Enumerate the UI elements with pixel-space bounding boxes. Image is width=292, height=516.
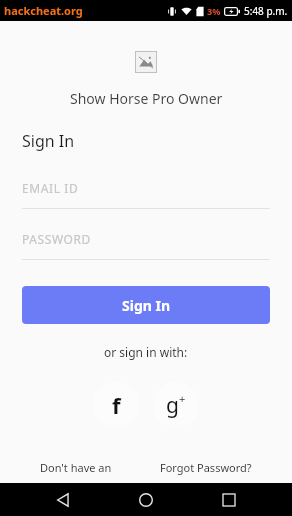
staticText: Don't have an: [40, 460, 112, 475]
staticText: EMAIL ID: [22, 180, 79, 196]
button[interactable]: Don't have an: [34, 458, 118, 477]
staticText: hackcheat.org: [4, 3, 83, 18]
button[interactable]: Recent apps: [209, 483, 249, 516]
button[interactable]: Forgot Password?: [154, 458, 258, 477]
button[interactable]: Home: [126, 483, 166, 516]
staticText: f: [112, 390, 121, 420]
staticText: +: [179, 391, 186, 406]
staticText: Forgot Password?: [160, 460, 252, 475]
staticText: 3%: [207, 5, 221, 17]
staticText: PASSWORD: [22, 231, 91, 247]
staticText: Show Horse Pro Owner: [70, 89, 223, 108]
staticText: or sign in with:: [104, 344, 188, 360]
button[interactable]: Sign in with Google Plus: [153, 382, 199, 428]
staticText: Sign In: [22, 130, 75, 152]
button[interactable]: Back: [43, 483, 83, 516]
button[interactable]: Sign in with Facebook: [93, 382, 139, 428]
button[interactable]: Sign In: [22, 286, 270, 324]
staticText: Sign In: [122, 296, 171, 315]
staticText: g: [166, 391, 179, 420]
staticText: 5:48 p.m.: [244, 4, 288, 18]
